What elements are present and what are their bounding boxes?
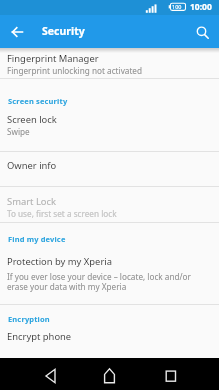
staticText: If you ever lose your device – locate, l… bbox=[7, 271, 191, 293]
staticText: To use, first set a screen lock bbox=[7, 208, 117, 219]
button[interactable] bbox=[8, 23, 26, 41]
staticText: Encryption bbox=[8, 314, 50, 324]
staticText: Security bbox=[42, 24, 85, 38]
button[interactable]: Owner info bbox=[0, 159, 219, 179]
button[interactable]: Screen lock bbox=[0, 113, 219, 141]
staticText: Encrypt phone bbox=[7, 330, 72, 343]
staticText: Owner info bbox=[7, 159, 57, 172]
button[interactable] bbox=[160, 362, 182, 384]
button[interactable] bbox=[193, 23, 213, 43]
button[interactable]: Smart Lock bbox=[0, 195, 219, 222]
staticText: 100 bbox=[172, 3, 182, 10]
staticText: 10:00 bbox=[190, 1, 212, 13]
button[interactable]: Fingerprint Manager bbox=[0, 52, 219, 79]
staticText: Fingerprint unlocking not activated bbox=[7, 65, 143, 76]
staticText: Screen security bbox=[8, 96, 68, 106]
staticText: Fingerprint Manager bbox=[7, 52, 99, 65]
staticText: Screen lock bbox=[7, 113, 57, 126]
button[interactable] bbox=[42, 362, 64, 384]
button[interactable]: Encrypt phone bbox=[0, 330, 219, 350]
button[interactable]: Protection by my Xperia bbox=[0, 255, 219, 297]
staticText: Swipe bbox=[7, 126, 30, 137]
staticText: Smart Lock bbox=[7, 195, 57, 208]
button[interactable] bbox=[99, 362, 121, 384]
staticText: Find my device bbox=[8, 234, 66, 244]
staticText: Protection by my Xperia bbox=[7, 255, 112, 268]
